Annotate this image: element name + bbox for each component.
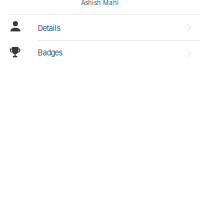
button[interactable]: Badges bbox=[0, 0, 200, 200]
staticText: Ashish Mahi bbox=[81, 0, 119, 7]
button[interactable]: Details bbox=[0, 0, 200, 200]
staticText: Details bbox=[38, 24, 61, 33]
staticText: Badges bbox=[38, 48, 63, 57]
